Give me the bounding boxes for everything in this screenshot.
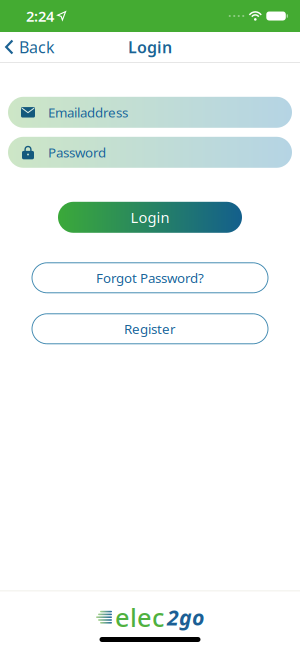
staticText: 2go — [167, 603, 204, 631]
staticText: Forgot Password? — [96, 269, 204, 287]
staticText: Emailaddress — [48, 103, 128, 121]
staticText: Register — [124, 320, 176, 338]
button[interactable]: Back — [0, 36, 55, 58]
staticText: 2:24 — [26, 6, 54, 26]
staticText: Login — [128, 36, 172, 58]
staticText: Login — [130, 208, 169, 227]
button[interactable]: Register — [32, 314, 268, 344]
button[interactable]: Login — [58, 202, 242, 233]
staticText: Back — [19, 36, 55, 58]
staticText: Password — [48, 143, 106, 161]
button[interactable]: Forgot Password? — [32, 263, 268, 293]
staticText: elec — [115, 600, 164, 634]
